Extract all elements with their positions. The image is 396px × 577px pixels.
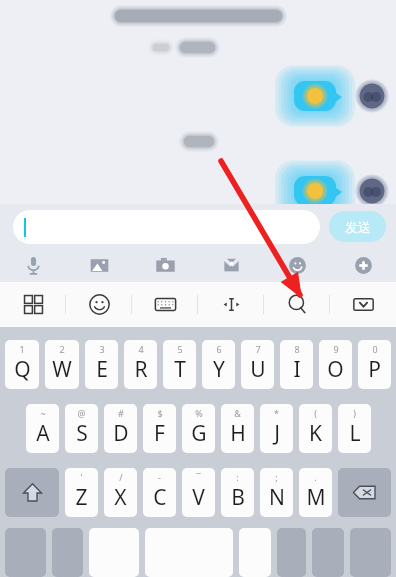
staticText: ) — [353, 407, 356, 419]
button[interactable]: Settings — [312, 528, 344, 577]
button[interactable]: Camera — [132, 249, 198, 282]
staticText: A — [36, 419, 50, 448]
staticText: : — [236, 471, 239, 483]
button[interactable]: Comma — [89, 528, 139, 577]
button[interactable]: Backspace — [338, 468, 391, 517]
button[interactable]: Search — [264, 282, 330, 327]
button[interactable]: Gift — [198, 249, 264, 282]
button[interactable]: Language — [52, 528, 83, 577]
button[interactable]: Emoji — [264, 249, 330, 282]
button[interactable]: & — [221, 404, 254, 453]
staticText: ' — [80, 471, 83, 483]
staticText: # — [118, 407, 124, 419]
staticText: 1 — [19, 343, 25, 355]
staticText: E — [96, 355, 108, 384]
button[interactable]: Keyboard layout — [132, 282, 198, 327]
staticText: K — [309, 419, 322, 448]
staticText: $ — [157, 407, 163, 419]
staticText: ~ — [40, 407, 46, 419]
button[interactable]: ¯ — [182, 468, 215, 517]
button[interactable]: - — [143, 468, 176, 517]
staticText: Q — [14, 355, 31, 384]
staticText: @ — [77, 407, 86, 419]
button[interactable]: ' — [65, 468, 98, 517]
button[interactable]: / — [104, 468, 137, 517]
staticText: 5 — [177, 343, 183, 355]
staticText: I — [293, 355, 301, 384]
staticText: J — [274, 419, 280, 448]
button[interactable]: ~ — [26, 404, 59, 453]
button[interactable]: Enter — [350, 528, 391, 577]
button[interactable]: Period — [239, 528, 271, 577]
button[interactable]: Apps — [0, 282, 66, 327]
staticText: 2 — [59, 343, 65, 355]
staticText: 7 — [255, 343, 261, 355]
staticText: . — [314, 471, 317, 483]
staticText: N — [269, 483, 285, 512]
button[interactable]: 发送 — [329, 211, 386, 242]
button[interactable]: : — [221, 468, 254, 517]
staticText: P — [368, 355, 381, 384]
staticText: W — [52, 355, 72, 384]
staticText: Z — [75, 483, 88, 512]
staticText: Y — [213, 355, 225, 384]
button[interactable]: Voice input — [0, 249, 66, 282]
button[interactable]: # — [104, 404, 137, 453]
button[interactable]: Shift — [5, 468, 59, 517]
button[interactable]: 0 — [358, 340, 391, 389]
button[interactable]: More — [330, 249, 396, 282]
staticText: / — [119, 471, 123, 483]
staticText: - — [158, 471, 161, 483]
staticText: M — [306, 483, 326, 512]
button[interactable]: ) — [338, 404, 371, 453]
staticText: 9 — [333, 343, 339, 355]
button[interactable]: Emoji — [277, 528, 306, 577]
button[interactable]: Emoji — [66, 282, 132, 327]
button[interactable]: . — [299, 468, 332, 517]
staticText: * — [274, 407, 279, 419]
button[interactable]: 6 — [202, 340, 235, 389]
staticText: 6 — [216, 343, 222, 355]
button[interactable]: Hide keyboard — [330, 282, 396, 327]
staticText: X — [114, 483, 127, 512]
staticText: G — [191, 419, 207, 448]
button[interactable]: Gallery — [66, 249, 132, 282]
button[interactable]: $ — [143, 404, 176, 453]
button[interactable]: Space — [145, 528, 233, 577]
button[interactable]: ; — [260, 468, 293, 517]
button[interactable]: 1 — [5, 340, 39, 389]
staticText: S — [76, 419, 88, 448]
staticText: T — [174, 355, 186, 384]
button[interactable]: * — [260, 404, 293, 453]
button[interactable]: 8 — [280, 340, 313, 389]
staticText: 8 — [294, 343, 300, 355]
button[interactable]: 9 — [319, 340, 352, 389]
button[interactable]: 4 — [124, 340, 157, 389]
staticText: 0 — [372, 343, 378, 355]
button[interactable]: 5 — [163, 340, 196, 389]
staticText: ( — [314, 407, 317, 419]
staticText: V — [192, 483, 205, 512]
button[interactable]: 3 — [85, 340, 118, 389]
staticText: ; — [275, 471, 278, 483]
staticText: B — [231, 483, 245, 512]
staticText: U — [250, 355, 266, 384]
staticText: & — [234, 407, 241, 419]
button[interactable]: ( — [299, 404, 332, 453]
staticText: D — [113, 419, 129, 448]
button[interactable]: 2 — [45, 340, 79, 389]
button[interactable]: 7 — [241, 340, 274, 389]
button[interactable]: @ — [65, 404, 98, 453]
button[interactable]: % — [182, 404, 215, 453]
staticText: L — [349, 419, 361, 448]
staticText: F — [154, 419, 165, 448]
staticText: % — [195, 407, 203, 419]
button[interactable]: Move cursor — [198, 282, 264, 327]
button[interactable] — [13, 210, 320, 244]
staticText: 发送 — [345, 219, 371, 235]
staticText: C — [153, 483, 167, 512]
staticText: 3 — [99, 343, 105, 355]
staticText: O — [327, 355, 344, 384]
button[interactable]: Symbols — [5, 528, 46, 577]
staticText: R — [134, 355, 148, 384]
